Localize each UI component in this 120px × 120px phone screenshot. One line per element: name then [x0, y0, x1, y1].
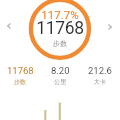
button[interactable]: 8.20: [40, 65, 80, 86]
button[interactable]: Back: [1, 18, 17, 34]
staticText: 11768: [36, 18, 84, 39]
staticText: 公里: [54, 78, 66, 86]
staticText: 大卡: [94, 78, 106, 86]
staticText: 11768: [7, 65, 34, 76]
staticText: 212.6: [88, 65, 112, 76]
button[interactable]: Next: [102, 19, 118, 35]
staticText: 步数: [53, 39, 67, 48]
button[interactable]: 11768: [0, 65, 40, 86]
button[interactable]: 212.6: [80, 65, 120, 86]
staticText: 步数: [14, 78, 26, 86]
staticText: 117.7%: [41, 8, 79, 21]
staticText: 8.20: [51, 65, 70, 76]
